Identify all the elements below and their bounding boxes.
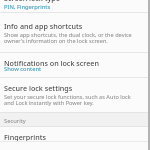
staticText: Info and app shortcuts [4,21,83,31]
staticText: Screen lock type [4,0,60,3]
button[interactable]: Screen lock type [0,0,150,12]
button[interactable]: Info and app shortcuts [0,13,150,52]
staticText: Notifications on lock screen [4,58,99,68]
staticText: Show content [4,65,42,73]
staticText: Secure lock settings [4,83,73,93]
staticText: Set your secure lock functions, such as … [4,93,131,106]
button[interactable]: Secure lock settings [0,78,150,112]
staticText: Fingerprints [4,132,47,142]
staticText: Security [4,117,26,125]
staticText: PIN, Fingerprints [4,3,51,11]
button[interactable]: Notifications on lock screen [0,53,150,77]
staticText: Show app shortcuts, the dual clock, or t… [4,31,132,44]
button[interactable]: Fingerprints [0,127,150,141]
